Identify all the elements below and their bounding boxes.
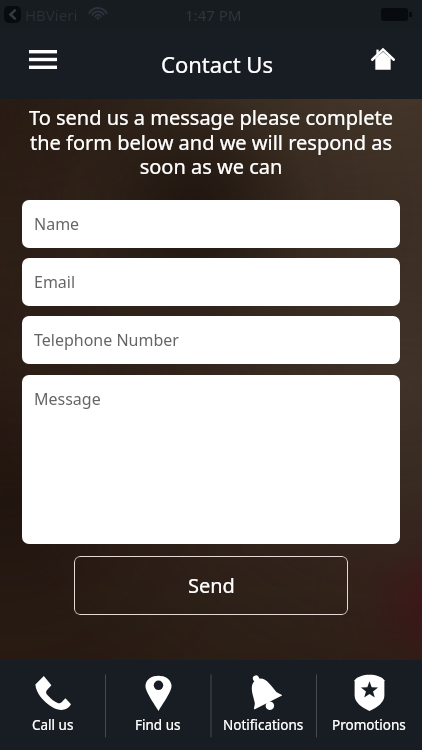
staticText: Contact Us <box>161 49 273 79</box>
button[interactable]: Telephone Number <box>22 316 400 364</box>
staticText: Send <box>188 572 235 599</box>
staticText: To send us a message please complete the… <box>10 104 412 180</box>
staticText: Name <box>34 213 80 235</box>
button[interactable]: Promotions <box>316 660 422 750</box>
button[interactable]: Email <box>22 258 400 306</box>
button[interactable]: Name <box>22 200 400 248</box>
button[interactable]: Menu <box>20 36 66 82</box>
staticText: Message <box>34 388 101 410</box>
staticText: Telephone Number <box>34 329 179 351</box>
button[interactable]: Find us <box>105 660 210 750</box>
staticText: Call us <box>32 716 74 734</box>
staticText: Notifications <box>223 716 304 734</box>
button[interactable]: Send <box>74 556 348 615</box>
button[interactable]: Home <box>360 36 406 82</box>
button[interactable]: Call us <box>0 660 105 750</box>
staticText: 1:47 PM <box>185 5 242 25</box>
staticText: HBVieri <box>25 5 78 25</box>
button[interactable]: Message <box>22 375 400 544</box>
staticText: Promotions <box>332 716 406 734</box>
staticText: Find us <box>135 716 181 734</box>
staticText: Email <box>34 271 76 293</box>
button[interactable]: Back <box>4 6 21 23</box>
button[interactable]: Notifications <box>210 660 316 750</box>
